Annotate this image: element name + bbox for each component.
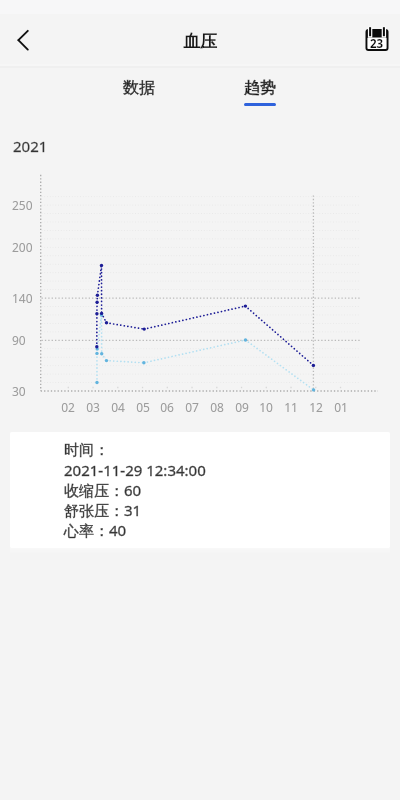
button[interactable]: Back [0,17,46,63]
staticText: 舒张压：31 [64,500,142,520]
staticText: 02 [61,399,75,415]
staticText: 收缩压：60 [64,480,142,500]
staticText: 时间： [64,441,109,460]
staticText: 舒张压：31 [64,500,142,520]
staticText: 03 [86,399,100,415]
staticText: 趋势 [244,78,276,98]
staticText: 140 [12,290,33,306]
staticText: 血压 [183,31,217,52]
button[interactable]: Pick date [363,25,393,55]
button[interactable]: 数据 [99,68,179,114]
staticText: 07 [185,399,199,415]
staticText: 10 [259,399,273,415]
staticText: 200 [12,239,33,255]
staticText: 2021-11-29 12:34:00 [64,460,206,480]
staticText: 01 [334,399,348,415]
staticText: 时间： [64,441,109,460]
staticText: 收缩压：60 [64,480,142,500]
staticText: 30 [12,383,26,399]
staticText: 11 [284,399,298,415]
staticText: 心率：40 [64,520,127,540]
staticText: 数据 [123,78,155,98]
staticText: 250 [12,197,33,213]
staticText: 23 [370,36,384,52]
staticText: 数据 [123,78,155,98]
staticText: 05 [136,399,150,415]
staticText: 08 [210,399,224,415]
staticText: 04 [111,399,125,415]
staticText: 2021-11-29 12:34:00 [64,460,206,480]
staticText: 心率：40 [64,520,127,540]
staticText: 90 [12,332,26,348]
staticText: 2021 [13,136,48,156]
button[interactable]: 时间： [10,432,390,548]
staticText: 趋势 [244,78,276,98]
staticText: 2021 [13,136,48,156]
staticText: 12 [309,399,323,415]
staticText: 09 [235,399,249,415]
button[interactable]: 趋势 [220,68,300,114]
staticText: 06 [160,399,174,415]
